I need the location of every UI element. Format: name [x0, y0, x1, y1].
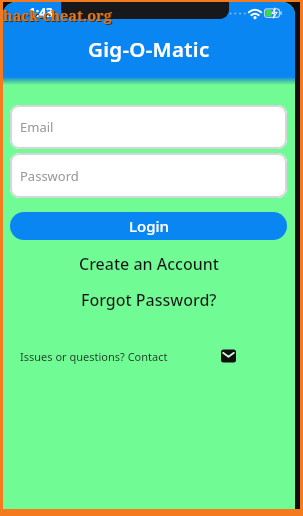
button[interactable]: Password [10, 153, 287, 198]
button[interactable]: Issues or questions? Contact [20, 346, 180, 366]
staticText: Gig-O-Matic [88, 35, 210, 63]
staticText: hack-cheat.org [4, 6, 113, 26]
staticText: Create an Account [79, 253, 219, 275]
staticText: Forgot Password? [81, 289, 217, 311]
button[interactable]: Create an Account [3, 250, 295, 278]
staticText: hack-cheat.org [3, 5, 112, 25]
staticText: Email [20, 118, 54, 136]
button[interactable] [221, 349, 237, 363]
button[interactable]: Login [10, 212, 287, 240]
staticText: Password [20, 167, 79, 185]
staticText: 1:43 [29, 4, 53, 20]
staticText: Issues or questions? Contact [20, 349, 168, 364]
staticText: Login [129, 216, 169, 236]
button[interactable]: Forgot Password? [3, 286, 295, 314]
button[interactable]: Email [10, 105, 287, 149]
